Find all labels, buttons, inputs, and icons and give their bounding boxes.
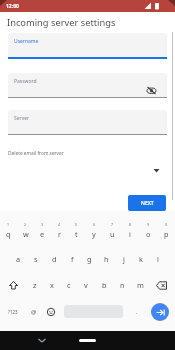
staticText: k [139,254,143,264]
staticText: h [104,254,109,264]
staticText: m [137,280,144,290]
button[interactable]: 0 [157,219,175,246]
staticText: 8 [129,222,132,227]
staticText: a [16,254,21,264]
button[interactable]: k [132,246,149,272]
staticText: NEXT [141,200,154,207]
staticText: y [92,229,96,239]
button[interactable]: 2 [17,219,34,246]
staticText: c [67,280,71,290]
button[interactable]: 7 [103,219,121,246]
staticText: n [120,280,125,290]
button[interactable]: @ [26,298,41,325]
button[interactable] [149,272,175,298]
staticText: Delete email from server [8,150,64,157]
button[interactable]: m [131,272,149,298]
staticText: 3 [41,222,44,227]
staticText: 7 [111,222,114,227]
button[interactable]: NEXT [128,195,166,211]
staticText: w [23,229,29,239]
staticText: f [71,254,74,264]
staticText: 1 [7,222,10,227]
staticText: ?123 [8,309,18,315]
staticText: l [157,254,159,264]
button[interactable] [79,339,96,342]
staticText: p [164,229,169,239]
staticText: e [40,229,45,239]
button[interactable]: d [45,246,63,272]
button[interactable]: Username [8,33,167,59]
staticText: 9 [147,222,150,227]
staticText: t [75,229,78,239]
staticText: 2 [24,222,27,227]
button[interactable] [0,166,175,174]
button[interactable]: 6 [85,219,103,246]
staticText: 6 [93,222,96,227]
staticText: o [146,229,151,239]
button[interactable]: l [149,246,166,272]
button[interactable] [0,272,26,298]
staticText: s [34,254,38,264]
button[interactable]: g [81,246,98,272]
button[interactable]: c [60,272,77,298]
button[interactable]: z [26,272,43,298]
staticText: @ [31,308,37,316]
button[interactable] [151,303,169,321]
staticText: r [58,229,62,239]
button[interactable]: a [9,246,27,272]
button[interactable]: 5 [68,219,85,246]
button[interactable]: Server [8,110,167,135]
button[interactable]: 1 [0,219,17,246]
button[interactable]: f [63,246,81,272]
button[interactable]: 4 [51,219,68,246]
staticText: 5 [75,222,78,227]
button[interactable]: v [77,272,95,298]
staticText: g [87,254,92,264]
button[interactable]: 9 [139,219,157,246]
staticText: b [102,280,107,290]
staticText: j [123,254,125,264]
button[interactable]: n [113,272,131,298]
staticText: Server [14,115,30,122]
staticText: 4 [58,222,61,227]
button[interactable]: ?123 [0,298,26,325]
staticText: Password [14,78,37,85]
staticText: x [50,280,54,290]
button[interactable]: x [43,272,60,298]
staticText: v [84,280,88,290]
button[interactable]: s [27,246,45,272]
staticText: d [52,254,57,264]
button[interactable]: h [98,246,115,272]
staticText: u [110,229,115,239]
staticText: Username [14,38,39,45]
staticText: z [33,280,37,290]
button[interactable]: j [115,246,132,272]
staticText: 0 [165,222,168,227]
button[interactable]: b [95,272,113,298]
button[interactable]: 8 [121,219,139,246]
staticText: Incoming server settings [7,16,116,29]
button[interactable] [41,298,60,325]
button[interactable]: Password [8,73,167,98]
staticText: q [6,229,11,239]
staticText: . [136,308,138,316]
staticText: i [129,229,131,239]
button[interactable]: 3 [34,219,51,246]
staticText: 12:00 [6,3,19,10]
